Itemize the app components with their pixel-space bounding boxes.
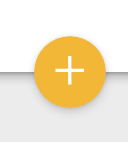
- button[interactable]: Add: [34, 36, 106, 108]
